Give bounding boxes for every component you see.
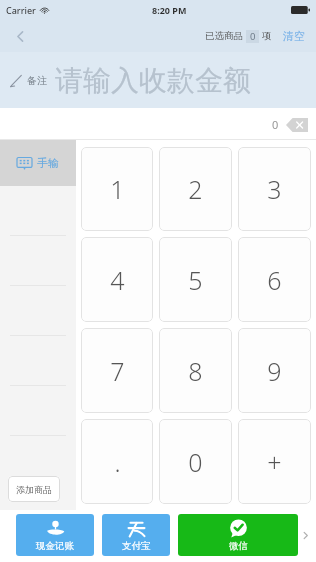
staticText: 8 — [188, 354, 203, 388]
button[interactable]: 2 — [159, 147, 232, 231]
button[interactable]: 8 — [159, 328, 232, 413]
staticText: 项 — [262, 30, 272, 42]
button[interactable]: 5 — [159, 237, 232, 322]
button[interactable]: 微信 — [178, 514, 298, 556]
staticText: 2 — [188, 172, 203, 206]
staticText: 添加商品 — [16, 484, 52, 495]
button[interactable]: + — [238, 419, 311, 504]
staticText: 3 — [267, 172, 282, 206]
button[interactable]: 7 — [81, 328, 153, 413]
button[interactable]: Back — [6, 22, 34, 50]
button[interactable]: 9 — [238, 328, 311, 413]
button[interactable]: 清空 — [281, 26, 307, 46]
staticText: 清空 — [283, 29, 305, 43]
staticText: 0 — [250, 30, 256, 43]
button[interactable]: Delete — [286, 118, 308, 132]
staticText: 5 — [188, 263, 203, 297]
staticText: 0 — [188, 445, 203, 479]
staticText: 6 — [267, 263, 282, 297]
staticText: 请输入收款金额 — [55, 63, 251, 98]
button[interactable]: 手输 — [0, 140, 76, 186]
staticText: 9 — [267, 354, 282, 388]
button[interactable]: 现金记账 — [16, 514, 94, 556]
staticText: 备注 — [27, 74, 47, 87]
staticText: 1 — [110, 172, 125, 206]
staticText: 已选商品 — [205, 30, 243, 42]
button[interactable]: More payment methods — [298, 514, 312, 556]
button[interactable]: 支付宝 — [102, 514, 170, 556]
staticText: . — [114, 445, 121, 479]
button[interactable]: 1 — [81, 147, 153, 231]
staticText: Carrier — [6, 4, 36, 16]
button[interactable]: 3 — [238, 147, 311, 231]
button[interactable]: 备注 — [0, 52, 316, 108]
button[interactable]: 6 — [238, 237, 311, 322]
staticText: 手输 — [37, 156, 59, 170]
button[interactable]: 0 — [159, 419, 232, 504]
staticText: 0 — [272, 117, 279, 132]
staticText: 微信 — [229, 540, 248, 552]
button[interactable]: . — [81, 419, 153, 504]
staticText: 8:20 PM — [152, 4, 187, 16]
staticText: 支付宝 — [122, 540, 151, 552]
button[interactable]: 4 — [81, 237, 153, 322]
staticText: 现金记账 — [36, 540, 74, 552]
staticText: + — [267, 445, 282, 479]
staticText: 7 — [110, 354, 125, 388]
button[interactable]: 添加商品 — [8, 476, 60, 502]
staticText: 4 — [110, 263, 125, 297]
